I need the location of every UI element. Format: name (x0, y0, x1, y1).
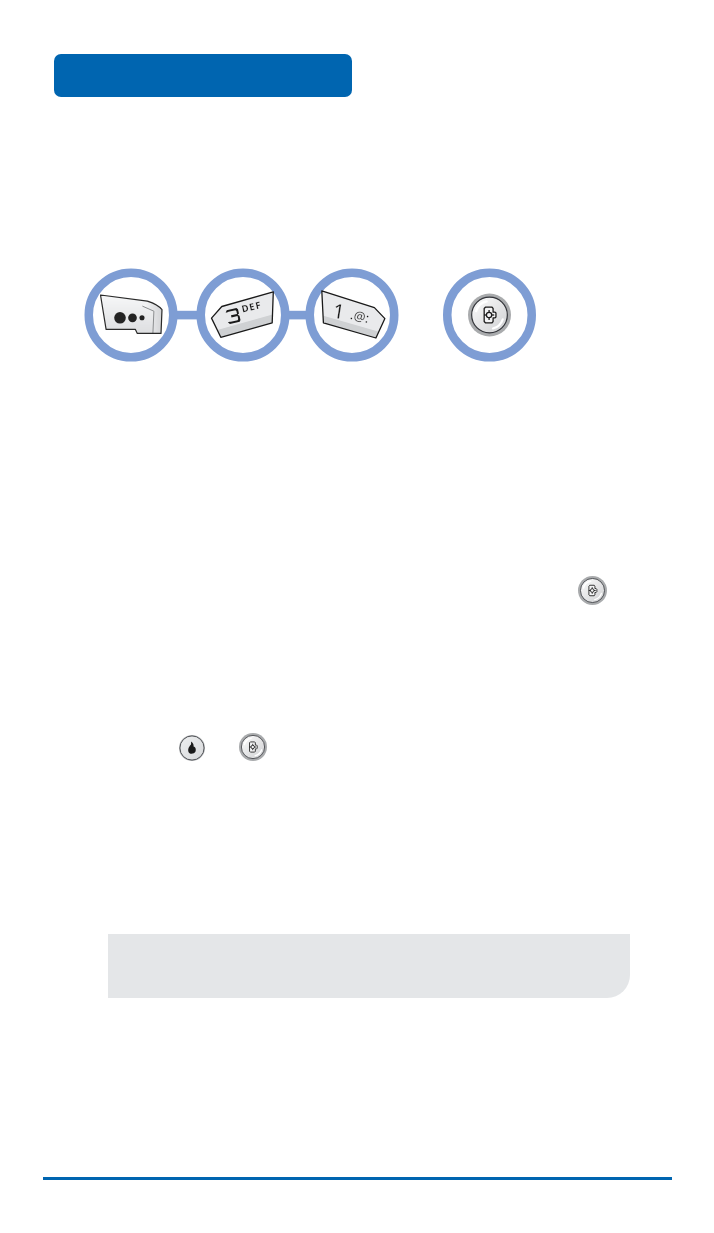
button[interactable]: Navigation key (443, 268, 536, 361)
button[interactable]: Navigation key (239, 733, 267, 761)
button[interactable]: Step 1: soft key (85, 268, 178, 361)
button[interactable]: Press key (179, 735, 205, 761)
button[interactable]: Section heading (54, 54, 352, 97)
button[interactable]: Step 3: key 1 (306, 268, 399, 361)
button[interactable]: Step 2: key 3 DEF (197, 268, 290, 361)
button[interactable]: Navigation key (578, 576, 607, 605)
